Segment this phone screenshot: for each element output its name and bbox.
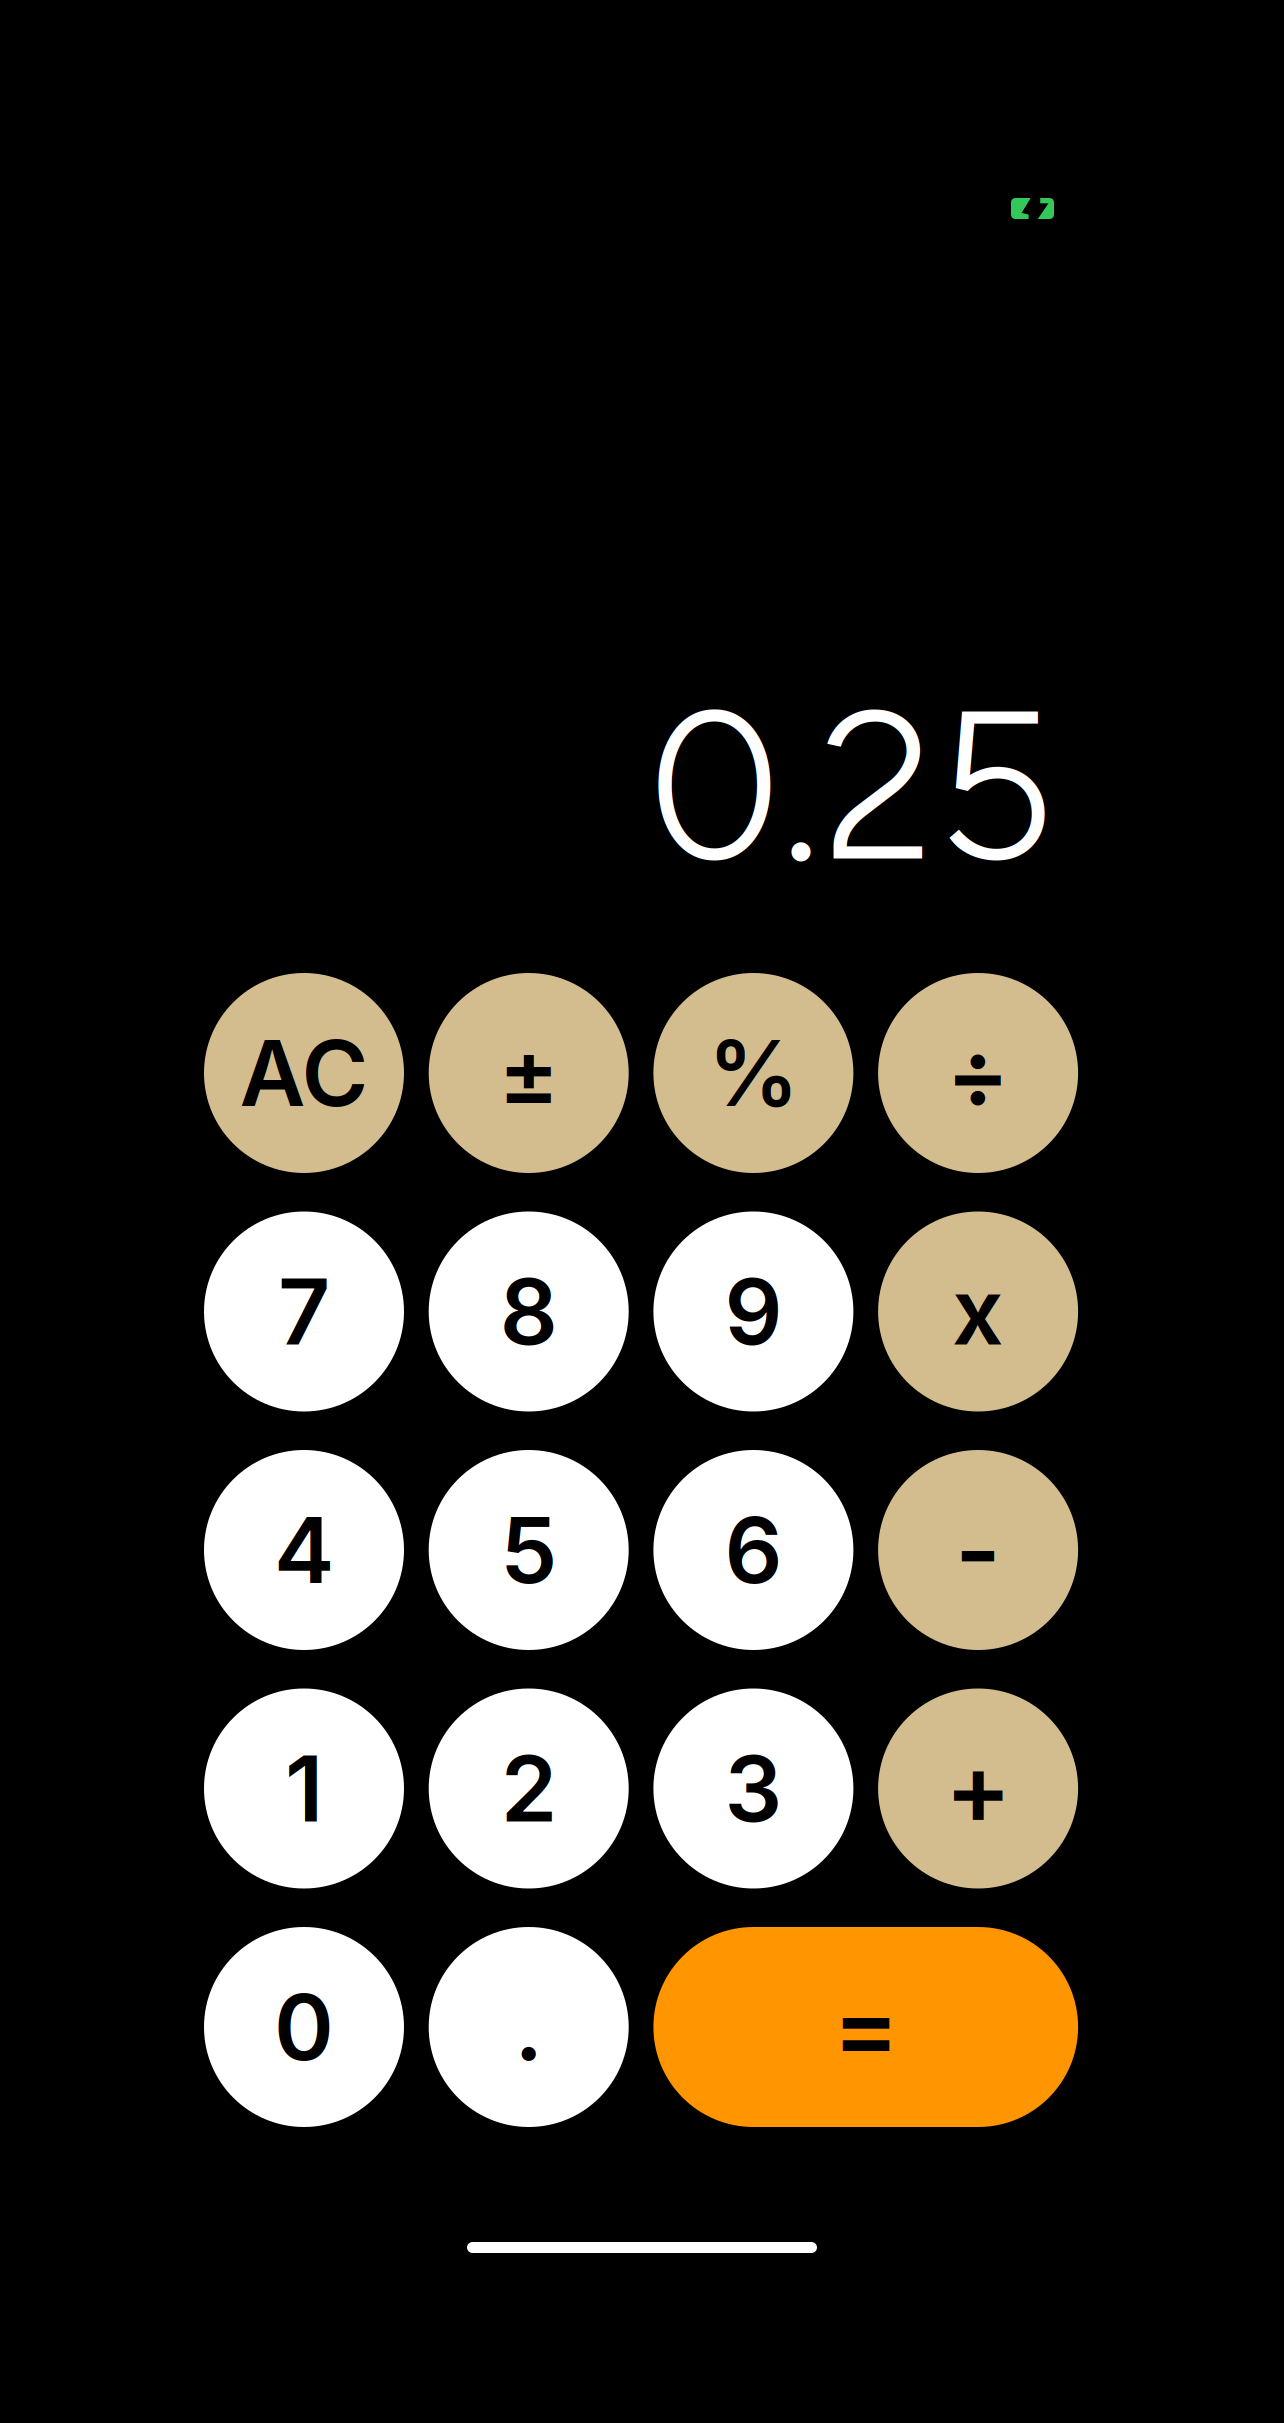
staticText: 8 [500,1257,558,1366]
staticText: 2 [501,1734,557,1843]
button[interactable]: 1 [204,1688,404,1888]
button[interactable]: Multiply [878,1211,1078,1411]
staticText: = [833,1967,899,2087]
button[interactable]: Equals [653,1927,1078,2127]
staticText: 0 [274,1972,334,2082]
staticText: + [945,1729,1011,1848]
staticText: 7 [278,1257,330,1366]
staticText: 1 [285,1734,323,1843]
staticText: 0.25 [648,661,1055,911]
button[interactable]: All clear [204,973,404,1173]
staticText: 4 [274,1495,334,1605]
button[interactable]: 5 [429,1450,629,1650]
button[interactable]: 3 [653,1688,853,1888]
button[interactable]: Decimal point [429,1927,629,2127]
button[interactable]: 6 [653,1450,853,1650]
staticText: ÷ [946,1016,1010,1130]
staticText: 6 [724,1495,782,1605]
button[interactable]: 4 [204,1450,404,1650]
staticText: x [952,1257,1004,1366]
button[interactable]: Divide [878,973,1078,1173]
button[interactable]: Percent [653,973,853,1173]
button[interactable]: 8 [429,1211,629,1411]
staticText: - [955,1490,1001,1610]
staticText: ± [498,1018,559,1128]
staticText: 9 [724,1257,782,1366]
button[interactable]: 0 [204,1927,404,2127]
button[interactable]: 2 [429,1688,629,1888]
staticText: 5 [500,1495,557,1605]
button[interactable]: Add [878,1688,1078,1888]
button[interactable]: 7 [204,1211,404,1411]
button[interactable]: Plus minus [429,973,629,1173]
button[interactable]: Subtract [878,1450,1078,1650]
staticText: 3 [724,1734,782,1843]
staticText: % [708,1018,799,1128]
staticText: AC [239,1018,368,1128]
button[interactable]: 9 [653,1211,853,1411]
staticText: . [514,1972,543,2082]
